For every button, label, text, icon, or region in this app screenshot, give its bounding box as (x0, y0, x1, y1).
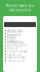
staticText: Whole milk (7, 29, 22, 32)
staticText: Chicken breast (7, 50, 27, 53)
staticText: Sourdough bread (7, 30, 23, 37)
staticText: Olive oil (7, 47, 19, 50)
staticText: daily grocery list (9, 8, 31, 12)
staticText: Greek yoghurt (7, 44, 27, 47)
staticText: Welcome back to your (5, 4, 34, 7)
staticText: Dark chocolate (7, 56, 26, 59)
staticText: Free-range eggs (7, 33, 22, 40)
staticText: Orange juice (7, 59, 25, 62)
staticText: Cherry tomatoes (7, 36, 19, 43)
staticText: Basmati rice (7, 53, 22, 56)
staticText: Baby spinach (7, 41, 24, 44)
